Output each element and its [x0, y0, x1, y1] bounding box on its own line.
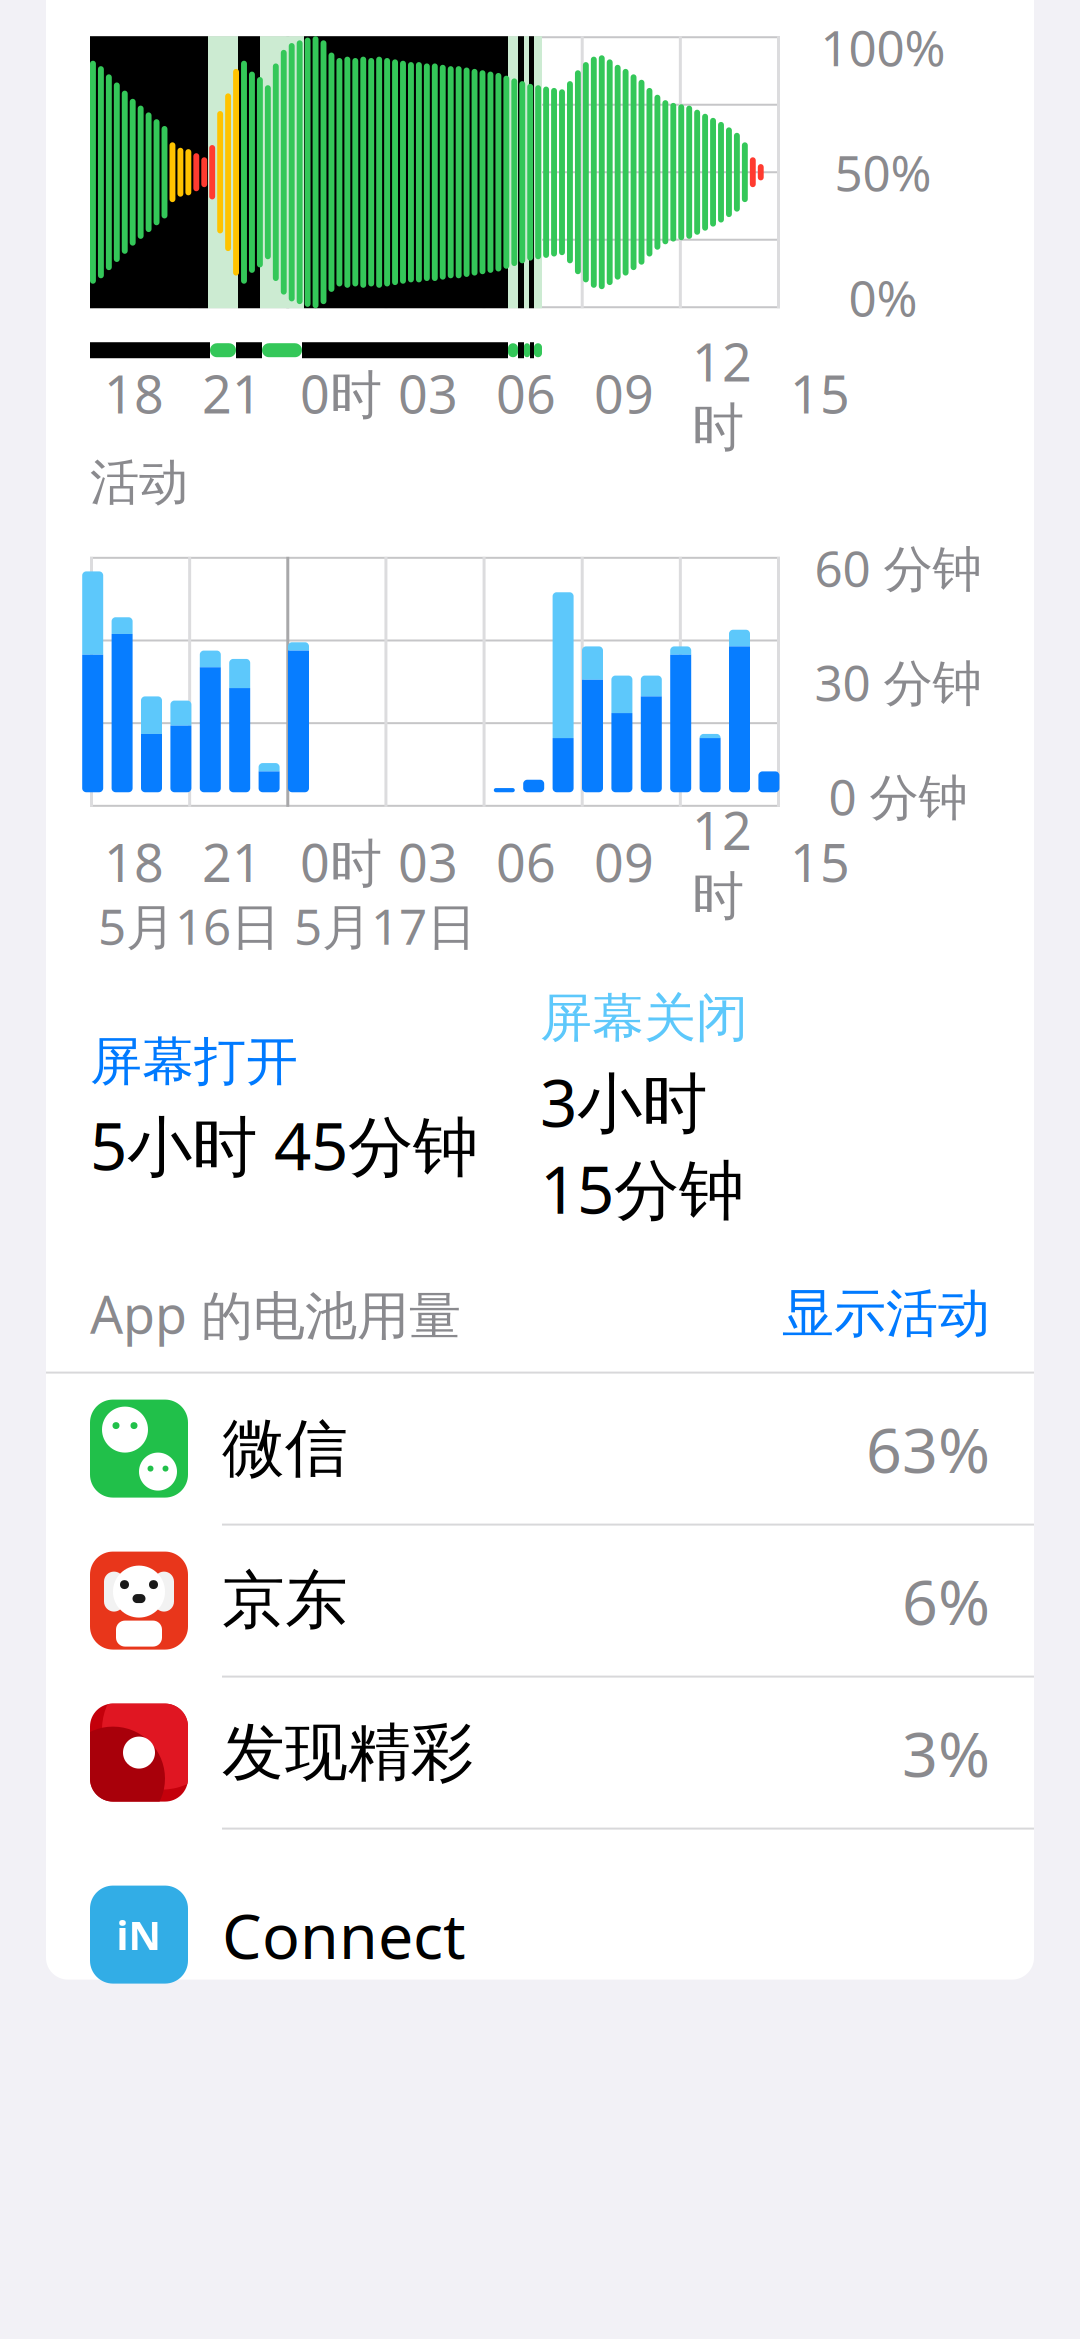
staticText: 0时	[300, 359, 382, 428]
button[interactable]: iN	[46, 1830, 1034, 1980]
button[interactable]: 显示活动	[762, 1274, 990, 1354]
staticText: 18	[104, 359, 164, 428]
staticText: 03	[398, 827, 458, 896]
button[interactable]: 微信	[46, 1374, 1034, 1524]
staticText: 06	[496, 359, 556, 428]
staticText: 03	[398, 359, 458, 428]
button[interactable]: 发现精彩	[46, 1678, 1034, 1828]
staticText: 3小时 15分钟	[540, 1058, 744, 1232]
staticText: 6%	[902, 1559, 990, 1642]
staticText: 60 分钟	[814, 535, 981, 600]
staticText: 显示活动	[782, 1282, 990, 1346]
staticText: 06	[496, 827, 556, 896]
staticText: 21	[202, 827, 262, 896]
staticText: 发现精彩	[222, 1714, 474, 1791]
staticText: 0时	[300, 827, 382, 896]
staticText: Connect	[222, 1893, 466, 1976]
staticText: 100%	[820, 14, 945, 80]
staticText: 0 分钟	[828, 763, 967, 829]
staticText: 12时	[692, 795, 752, 928]
staticText: 3%	[902, 1711, 990, 1794]
button[interactable]: 京东	[46, 1526, 1034, 1676]
staticText: 09	[594, 359, 654, 428]
staticText: 屏幕关闭	[540, 986, 748, 1050]
staticText: iN	[116, 1908, 161, 1961]
staticText: 12时	[692, 327, 752, 460]
staticText: 18	[104, 827, 164, 896]
staticText: 21	[202, 359, 262, 428]
staticText: 63%	[866, 1407, 990, 1490]
staticText: 09	[594, 827, 654, 896]
staticText: 15	[790, 359, 850, 428]
staticText: 京东	[222, 1562, 348, 1639]
staticText: App 的电池用量	[90, 1279, 461, 1348]
staticText: 15	[790, 827, 850, 896]
staticText: 屏幕打开	[90, 1030, 298, 1094]
staticText: 5月17日	[294, 893, 476, 958]
staticText: 50%	[834, 139, 931, 205]
staticText: 30 分钟	[814, 649, 981, 715]
staticText: 活动	[90, 452, 188, 513]
staticText: 5月16日	[98, 893, 280, 958]
staticText: 5小时 45分钟	[90, 1102, 478, 1188]
staticText: 0%	[848, 265, 917, 330]
staticText: 微信	[222, 1410, 348, 1487]
